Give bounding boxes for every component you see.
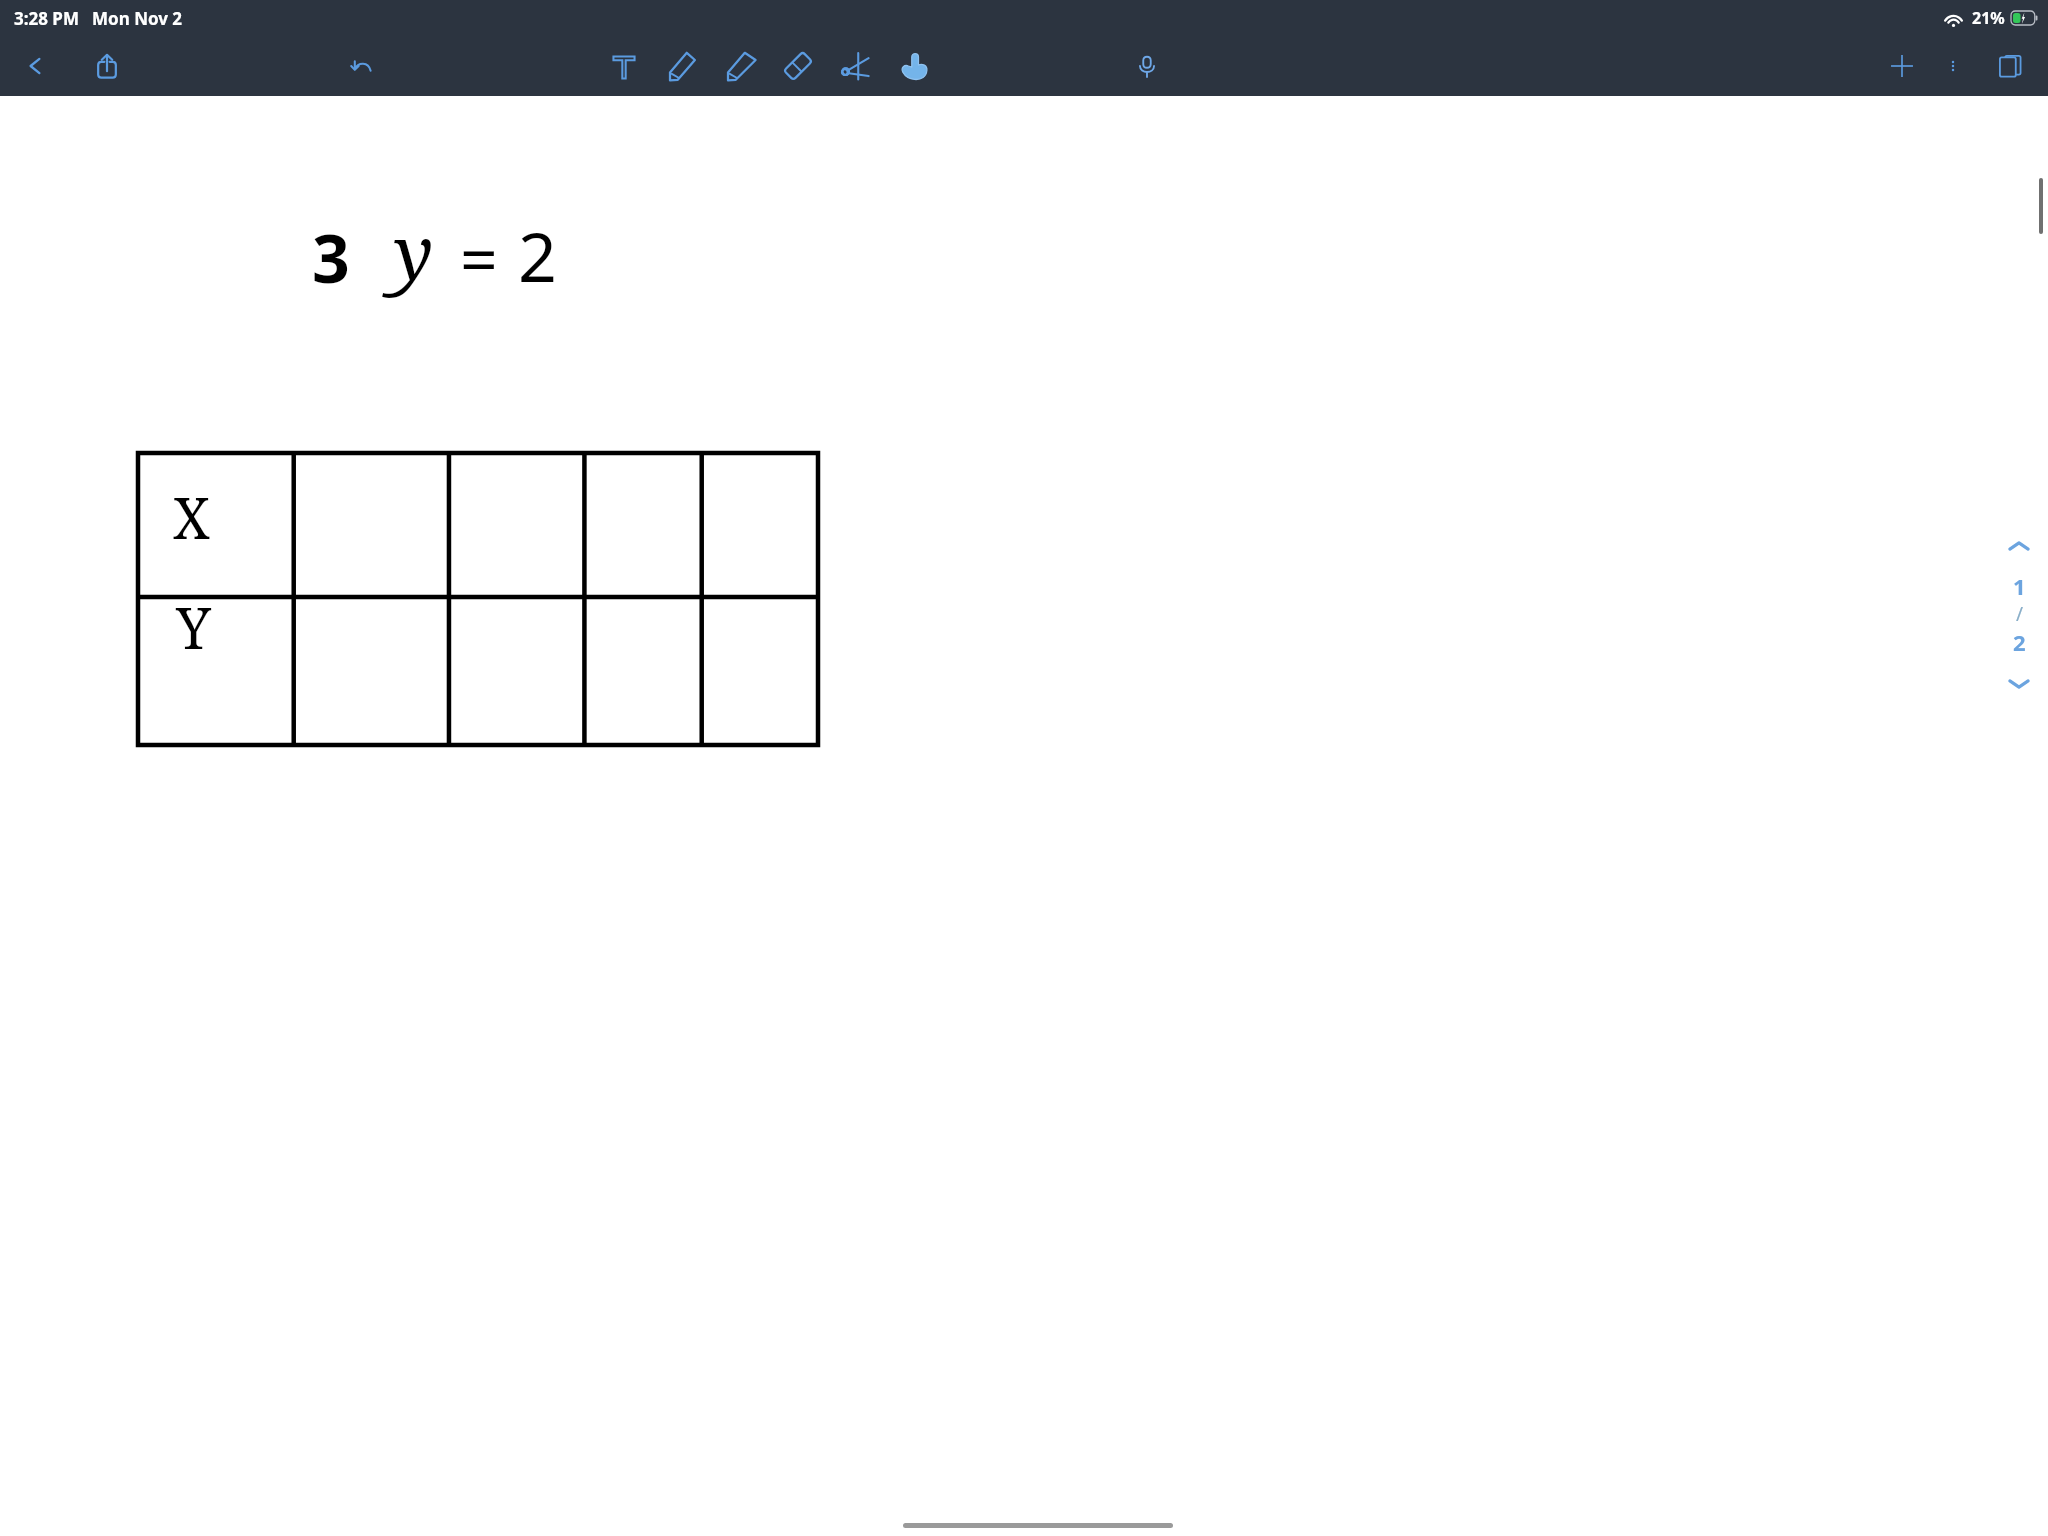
staticText: Mon Nov 2 [92,7,183,30]
staticText: 1 [2013,571,2026,601]
staticText: = [460,212,498,302]
button[interactable]: Highlighter tool [711,37,769,95]
button[interactable]: Record audio [1120,39,1174,93]
button[interactable]: Add [1874,38,1930,94]
button[interactable]: 1 [2007,571,2032,657]
button[interactable]: Pen tool [653,37,711,95]
button[interactable]: Back [8,39,62,93]
staticText: X [173,479,210,555]
button[interactable]: Lasso select [827,37,885,95]
button[interactable]: Undo [335,39,389,93]
staticText: 2 [2013,627,2026,657]
button[interactable]: Next page [2002,671,2036,697]
button[interactable] [138,453,818,745]
button[interactable]: Share [80,39,134,93]
staticText: / [2016,601,2024,627]
staticText: 2 [518,209,557,302]
staticText: Y [176,589,211,665]
button[interactable]: Eraser tool [769,37,827,95]
button[interactable]: Hand tool [885,37,943,95]
staticText: y [394,201,434,302]
button[interactable]: More options [1930,43,1976,89]
staticText: 3 [312,212,350,302]
button[interactable]: Pages [1982,38,2038,94]
staticText: 21% [1972,7,2005,29]
staticText: 3:28 PM [14,7,79,30]
button[interactable]: Text tool [595,37,653,95]
button[interactable]: Previous page [2002,533,2036,559]
